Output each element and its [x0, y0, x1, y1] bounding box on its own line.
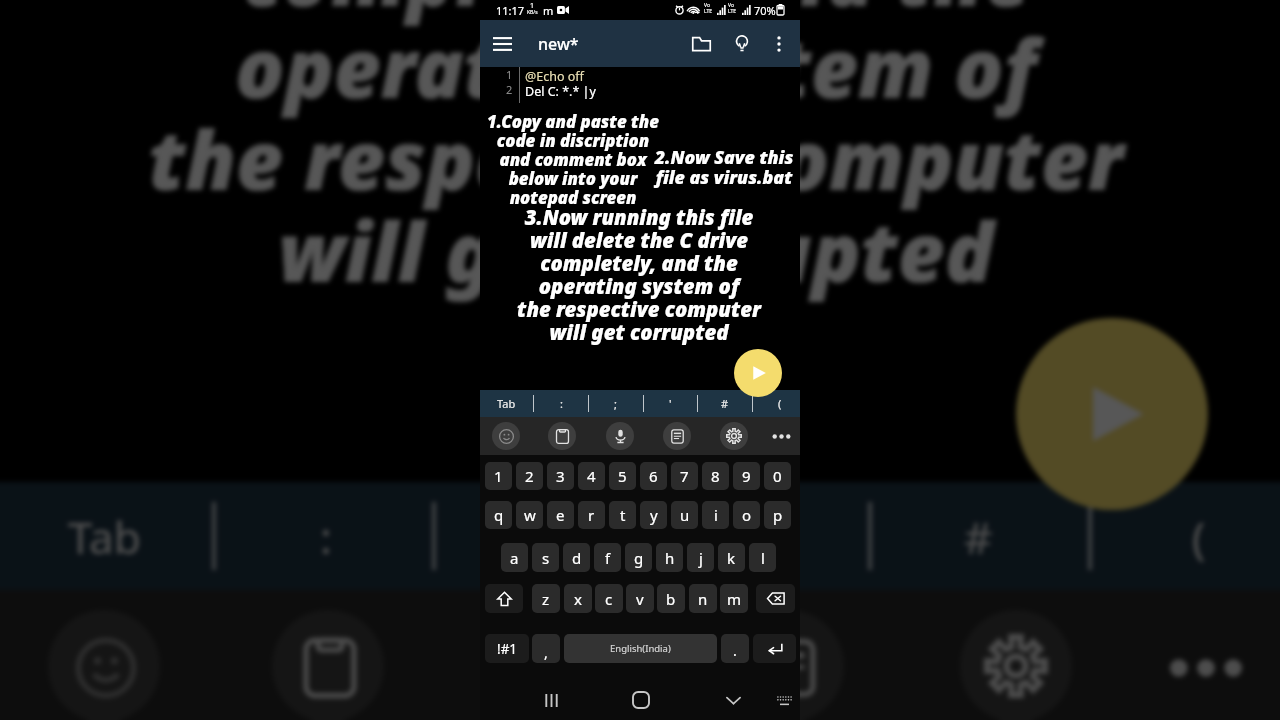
button[interactable]: Keyboard settings	[940, 590, 1092, 720]
staticText: 3.Now running this file will delete the …	[479, 203, 799, 346]
button[interactable]: 9	[733, 462, 760, 490]
button[interactable]: Tab	[479, 390, 534, 417]
button[interactable]: Hide keyboard	[713, 680, 753, 720]
staticText: #	[721, 396, 729, 411]
button[interactable]: c	[595, 584, 623, 613]
button[interactable]: Voice input	[601, 417, 639, 455]
staticText: s	[542, 548, 550, 568]
button[interactable]: ,	[532, 634, 560, 663]
button[interactable]: ;	[588, 390, 643, 417]
button[interactable]: g	[625, 543, 652, 572]
staticText: ;	[536, 506, 548, 566]
staticText: #	[964, 506, 996, 566]
button[interactable]: Emoji	[28, 590, 180, 720]
staticText: English(India)	[610, 642, 671, 655]
button[interactable]: Tips	[722, 24, 762, 64]
button[interactable]: 8	[702, 462, 729, 490]
button[interactable]: More options	[762, 27, 796, 61]
button[interactable]: 5	[609, 462, 636, 490]
button[interactable]: Voice input	[484, 590, 636, 720]
staticText: Vo	[704, 2, 710, 9]
button[interactable]: Shift	[485, 584, 523, 613]
staticText: t	[620, 505, 626, 525]
button[interactable]: o	[733, 501, 760, 529]
button[interactable]: Text editing	[658, 417, 696, 455]
button[interactable]: Switch keyboard	[764, 680, 804, 720]
button[interactable]: Clipboard	[252, 590, 404, 720]
button[interactable]: Text editing	[712, 590, 864, 720]
button[interactable]: Recents	[531, 680, 571, 720]
button[interactable]: 1	[485, 462, 512, 490]
button[interactable]: :	[534, 390, 589, 417]
button[interactable]: Home	[621, 680, 661, 720]
button[interactable]: h	[656, 543, 683, 572]
button[interactable]: 0	[764, 462, 791, 490]
staticText: 5	[618, 466, 627, 486]
button[interactable]: .	[721, 634, 749, 663]
button[interactable]: Tab	[0, 482, 216, 590]
button[interactable]: i	[702, 501, 729, 529]
button[interactable]: 3	[547, 462, 574, 490]
button[interactable]: English(India)	[564, 634, 717, 663]
button[interactable]: v	[626, 584, 654, 613]
button[interactable]: '	[652, 482, 872, 590]
button[interactable]: w	[516, 501, 543, 529]
button[interactable]: Keyboard settings	[715, 417, 753, 455]
staticText: Del C: *.* |y	[525, 83, 596, 100]
staticText: d	[572, 548, 582, 568]
button[interactable]: Navigation menu	[480, 22, 524, 66]
staticText: g	[634, 548, 644, 568]
button[interactable]: 7	[671, 462, 698, 490]
button[interactable]: !#1	[485, 634, 529, 663]
button[interactable]: :	[216, 482, 436, 590]
button[interactable]: l	[749, 543, 776, 572]
button[interactable]: 2	[516, 462, 543, 490]
staticText: 6	[649, 466, 658, 486]
staticText: e	[556, 505, 565, 525]
button[interactable]: Run script	[734, 349, 782, 397]
button[interactable]: More keyboard options	[762, 417, 800, 455]
button[interactable]: k	[718, 543, 745, 572]
button[interactable]: More keyboard options	[1128, 590, 1280, 720]
button[interactable]: 4	[578, 462, 605, 490]
button[interactable]: z	[532, 584, 560, 613]
staticText: c	[605, 589, 613, 609]
button[interactable]: ;	[432, 482, 652, 590]
staticText: @Echo off	[525, 68, 584, 85]
button[interactable]: #	[697, 390, 752, 417]
button[interactable]: a	[501, 543, 528, 572]
button[interactable]: r	[578, 501, 605, 529]
button[interactable]: y	[640, 501, 667, 529]
staticText: y	[650, 505, 658, 525]
button[interactable]: Backspace	[756, 584, 795, 613]
button[interactable]: j	[687, 543, 714, 572]
button[interactable]: t	[609, 501, 636, 529]
button[interactable]: Open folder	[680, 23, 722, 65]
staticText: KB/s	[527, 9, 538, 16]
button[interactable]: m	[720, 584, 748, 613]
button[interactable]: (	[1088, 482, 1280, 590]
button[interactable]: 6	[640, 462, 667, 490]
button[interactable]: Run script	[1016, 318, 1208, 510]
button[interactable]: (	[752, 390, 807, 417]
button[interactable]: q	[485, 501, 512, 529]
staticText: ;	[614, 396, 617, 411]
button[interactable]: d	[563, 543, 590, 572]
button[interactable]: Enter	[753, 634, 796, 663]
button[interactable]: Emoji	[487, 417, 525, 455]
staticText: p	[773, 505, 783, 525]
button[interactable]: '	[643, 390, 698, 417]
staticText: 0	[773, 466, 782, 486]
button[interactable]: x	[564, 584, 592, 613]
button[interactable]: u	[671, 501, 698, 529]
button[interactable]: e	[547, 501, 574, 529]
staticText: ,	[544, 643, 548, 662]
button[interactable]: Script editor	[480, 67, 800, 117]
button[interactable]: s	[532, 543, 559, 572]
button[interactable]: #	[868, 482, 1088, 590]
button[interactable]: p	[764, 501, 791, 529]
button[interactable]: n	[689, 584, 717, 613]
button[interactable]: f	[594, 543, 621, 572]
button[interactable]: Clipboard	[543, 417, 581, 455]
button[interactable]: b	[657, 584, 685, 613]
